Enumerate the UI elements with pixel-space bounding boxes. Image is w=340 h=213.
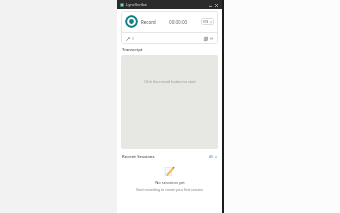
button[interactable]: EN bbox=[201, 18, 214, 25]
button[interactable]: Close bbox=[213, 2, 219, 8]
staticText: Start recording to create your first ses… bbox=[136, 187, 203, 192]
staticText: Recent Sessions bbox=[122, 154, 155, 160]
staticText: All bbox=[209, 154, 214, 159]
staticText: Click the record button to start bbox=[144, 79, 196, 84]
staticText: Transcript bbox=[122, 47, 143, 53]
button[interactable]: Record bbox=[125, 15, 138, 28]
button[interactable]: More options bbox=[209, 36, 214, 41]
staticText: LyncScribe bbox=[126, 2, 147, 8]
staticText: EN bbox=[203, 19, 209, 24]
button[interactable]: Copy transcript bbox=[203, 36, 208, 41]
staticText: Record bbox=[141, 19, 156, 25]
staticText: 00:00:00 bbox=[169, 19, 188, 25]
staticText: No sessions yet bbox=[155, 180, 185, 185]
button[interactable]: Edit note bbox=[125, 36, 130, 41]
button[interactable]: Minimize bbox=[207, 2, 213, 8]
button[interactable]: All bbox=[208, 153, 218, 160]
